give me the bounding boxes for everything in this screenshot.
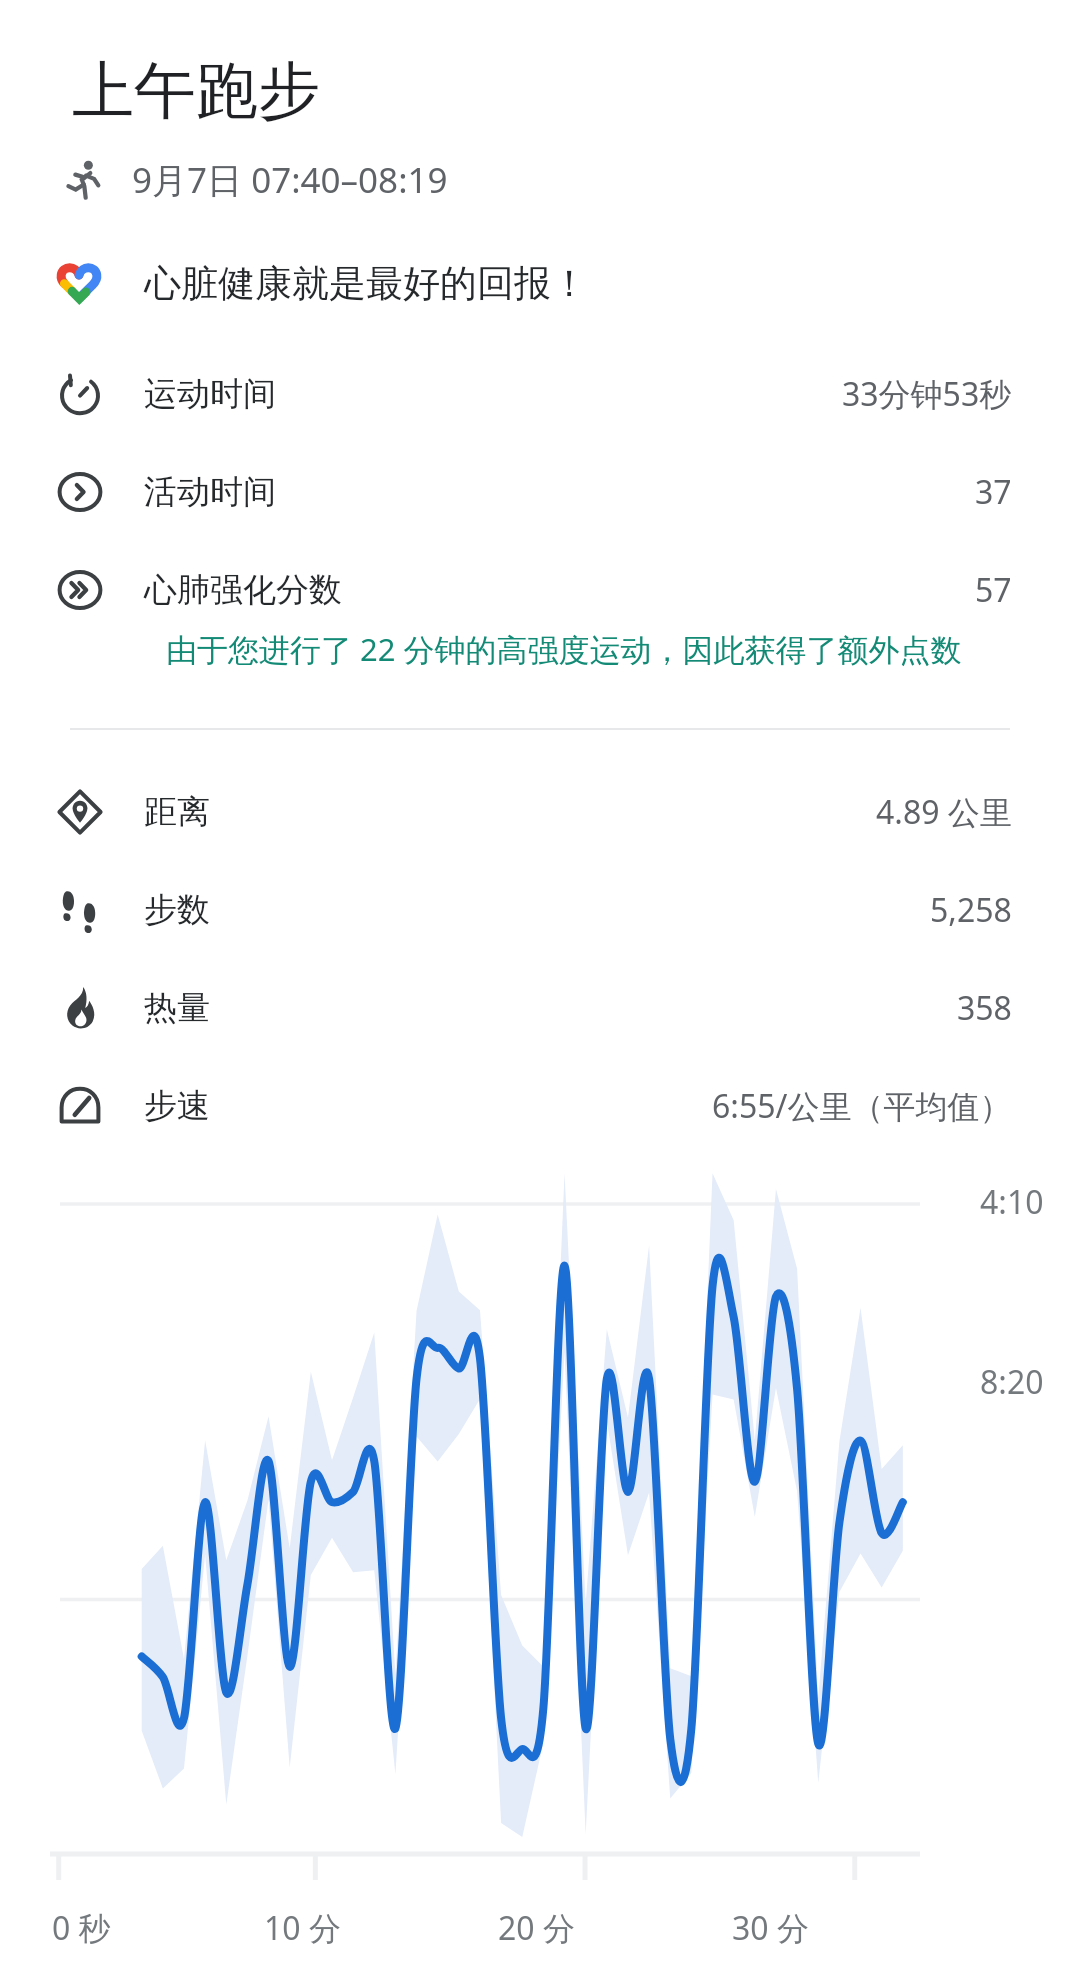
button[interactable]: 距离 xyxy=(0,788,1080,836)
staticText: 心肺强化分数 xyxy=(144,569,342,611)
staticText: 33分钟53秒 xyxy=(842,372,1012,416)
staticText: 步速 xyxy=(144,1085,210,1127)
staticText: 活动时间 xyxy=(144,471,276,513)
button[interactable]: 步速 xyxy=(0,1082,1080,1130)
staticText: 30 分 xyxy=(732,1906,809,1950)
button[interactable]: 运动时间 xyxy=(0,370,1080,418)
staticText: 37 xyxy=(975,470,1012,514)
staticText: 20 分 xyxy=(498,1906,575,1950)
staticText: 心脏健康就是最好的回报！ xyxy=(144,260,588,307)
staticText: 8:20 xyxy=(980,1360,1044,1404)
button[interactable]: 活动时间 xyxy=(0,468,1080,516)
staticText: 5,258 xyxy=(930,888,1012,932)
staticText: 10 分 xyxy=(264,1906,341,1950)
staticText: 由于您进行了 22 分钟的高强度运动，因此获得了额外点数 xyxy=(166,628,962,670)
staticText: 6:55/公里（平均值） xyxy=(712,1084,1012,1128)
button[interactable]: 热量 xyxy=(0,984,1080,1032)
staticText: 距离 xyxy=(144,791,210,833)
button[interactable]: 心肺强化分数 xyxy=(0,566,1080,614)
staticText: 运动时间 xyxy=(144,373,276,415)
button[interactable]: 心脏健康就是最好的回报！ xyxy=(0,254,1080,312)
staticText: 上午跑步 xyxy=(72,52,320,130)
staticText: 步数 xyxy=(144,889,210,931)
staticText: 9月7日 07:40–08:19 xyxy=(132,156,448,204)
staticText: 4:10 xyxy=(980,1180,1044,1224)
staticText: 358 xyxy=(957,986,1012,1030)
staticText: 4.89 公里 xyxy=(876,790,1012,834)
staticText: 0 秒 xyxy=(52,1906,111,1950)
staticText: 热量 xyxy=(144,987,210,1029)
staticText: 57 xyxy=(975,568,1012,612)
button[interactable]: 步数 xyxy=(0,886,1080,934)
